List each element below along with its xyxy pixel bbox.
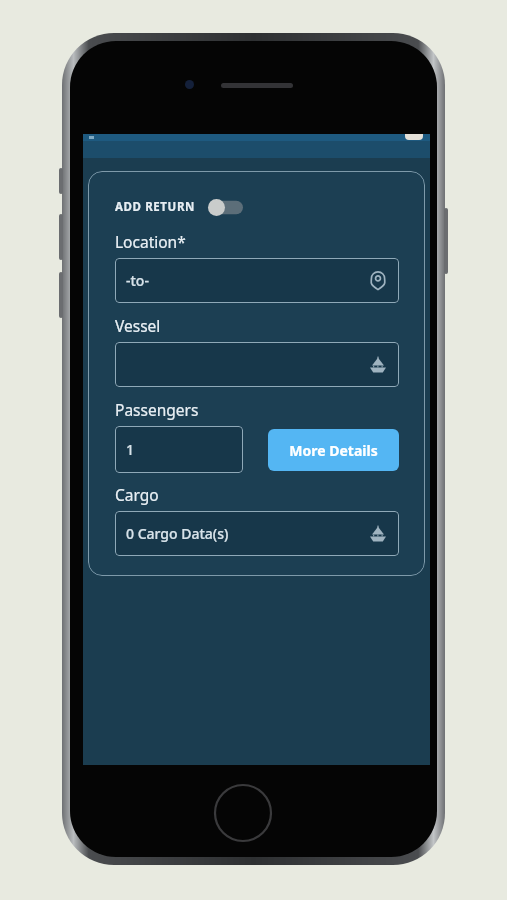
staticText: Cargo (115, 484, 159, 505)
button[interactable]: Select vessel (368, 524, 388, 544)
staticText: ADD RETURN (115, 199, 195, 215)
staticText: More Details (289, 441, 378, 460)
button[interactable]: More Details (268, 429, 399, 471)
button[interactable]: Pick location (368, 271, 388, 291)
staticText: Location* (115, 231, 186, 252)
staticText: Passengers (115, 399, 199, 420)
button[interactable]: -to- (115, 258, 399, 303)
staticText: Vessel (115, 315, 161, 336)
staticText: -to- (126, 271, 149, 290)
button[interactable]: 1 (115, 426, 243, 473)
button[interactable]: ADD RETURN (115, 194, 243, 220)
staticText: 1 (126, 440, 135, 459)
button[interactable]: Select vessel (368, 355, 388, 375)
button[interactable]: Select vessel (115, 342, 399, 387)
staticText: 0 Cargo Data(s) (126, 524, 229, 543)
button[interactable]: Add return toggle (208, 199, 243, 216)
button[interactable]: 0 Cargo Data(s) (115, 511, 399, 556)
button[interactable]: Home (213, 783, 273, 843)
